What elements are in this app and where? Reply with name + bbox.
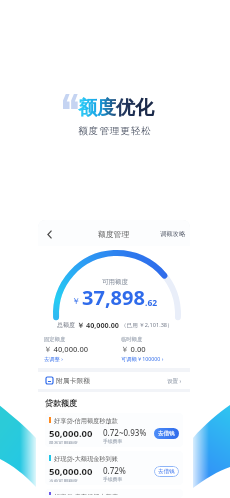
staticText: 好享贷-信用额度秒放款 <box>54 416 118 424</box>
staticText: 临时额度 <box>121 336 143 343</box>
staticText: .62 <box>145 297 158 309</box>
staticText: 可用额度 <box>102 278 128 286</box>
staticText: 好家贷-房产抵押大额度 <box>54 492 118 495</box>
staticText: 50,000.00 <box>49 465 93 478</box>
staticText: （已用 ￥2,101.38） <box>121 321 173 329</box>
staticText: 贷款额度 <box>45 398 77 408</box>
staticText: 去借钱 <box>158 430 175 437</box>
staticText: 50,000.00 <box>49 427 93 440</box>
staticText: 设置 › <box>167 377 182 385</box>
staticText: ￥ <box>72 296 81 307</box>
button[interactable]: 去借钱 <box>154 466 179 477</box>
staticText: 额度管理 <box>98 229 130 239</box>
staticText: 总额度 <box>57 321 75 329</box>
staticText: 固定额度 <box>44 336 66 343</box>
button[interactable]: 附属卡限额 <box>38 372 190 389</box>
staticText: ￥ 0.00 <box>121 344 146 354</box>
staticText: ￥ 40,000.00 <box>77 320 119 330</box>
staticText: 当前可用额度 <box>49 478 78 482</box>
staticText: 好现贷-大额现金秒到账 <box>54 454 118 462</box>
staticText: 0.72% <box>103 465 126 476</box>
button[interactable]: 可调额￥100000 › <box>121 355 164 362</box>
button[interactable]: 好享贷-信用额度秒放款 <box>45 413 183 447</box>
button[interactable]: 好现贷-大额现金秒到账 <box>45 451 183 485</box>
staticText: 附属卡限额 <box>56 376 90 385</box>
button[interactable]: 调额攻略 <box>156 227 190 241</box>
staticText: 最高可用额度 <box>49 440 78 444</box>
staticText: 去借钱 <box>158 468 175 475</box>
staticText: 可调额￥100000 › <box>121 355 164 362</box>
staticText: 额度管理更轻松 <box>78 125 153 137</box>
staticText: 37,898 <box>82 284 145 311</box>
staticText: ￥ 40,000.00 <box>44 344 89 354</box>
button[interactable]: 去调整 › <box>44 355 63 362</box>
staticText: 手续费率 <box>103 476 123 482</box>
button[interactable]: 好家贷-房产抵押大额度 <box>45 489 183 498</box>
staticText: 调额攻略 <box>160 230 186 238</box>
staticText: 额度优化 <box>78 96 154 120</box>
staticText: 去调整 › <box>44 355 63 362</box>
button[interactable]: 去借钱 <box>154 428 179 439</box>
staticText: 0.72~0.93% <box>103 427 147 438</box>
button[interactable]: Back <box>41 226 57 242</box>
staticText: 手续费率 <box>103 438 123 444</box>
